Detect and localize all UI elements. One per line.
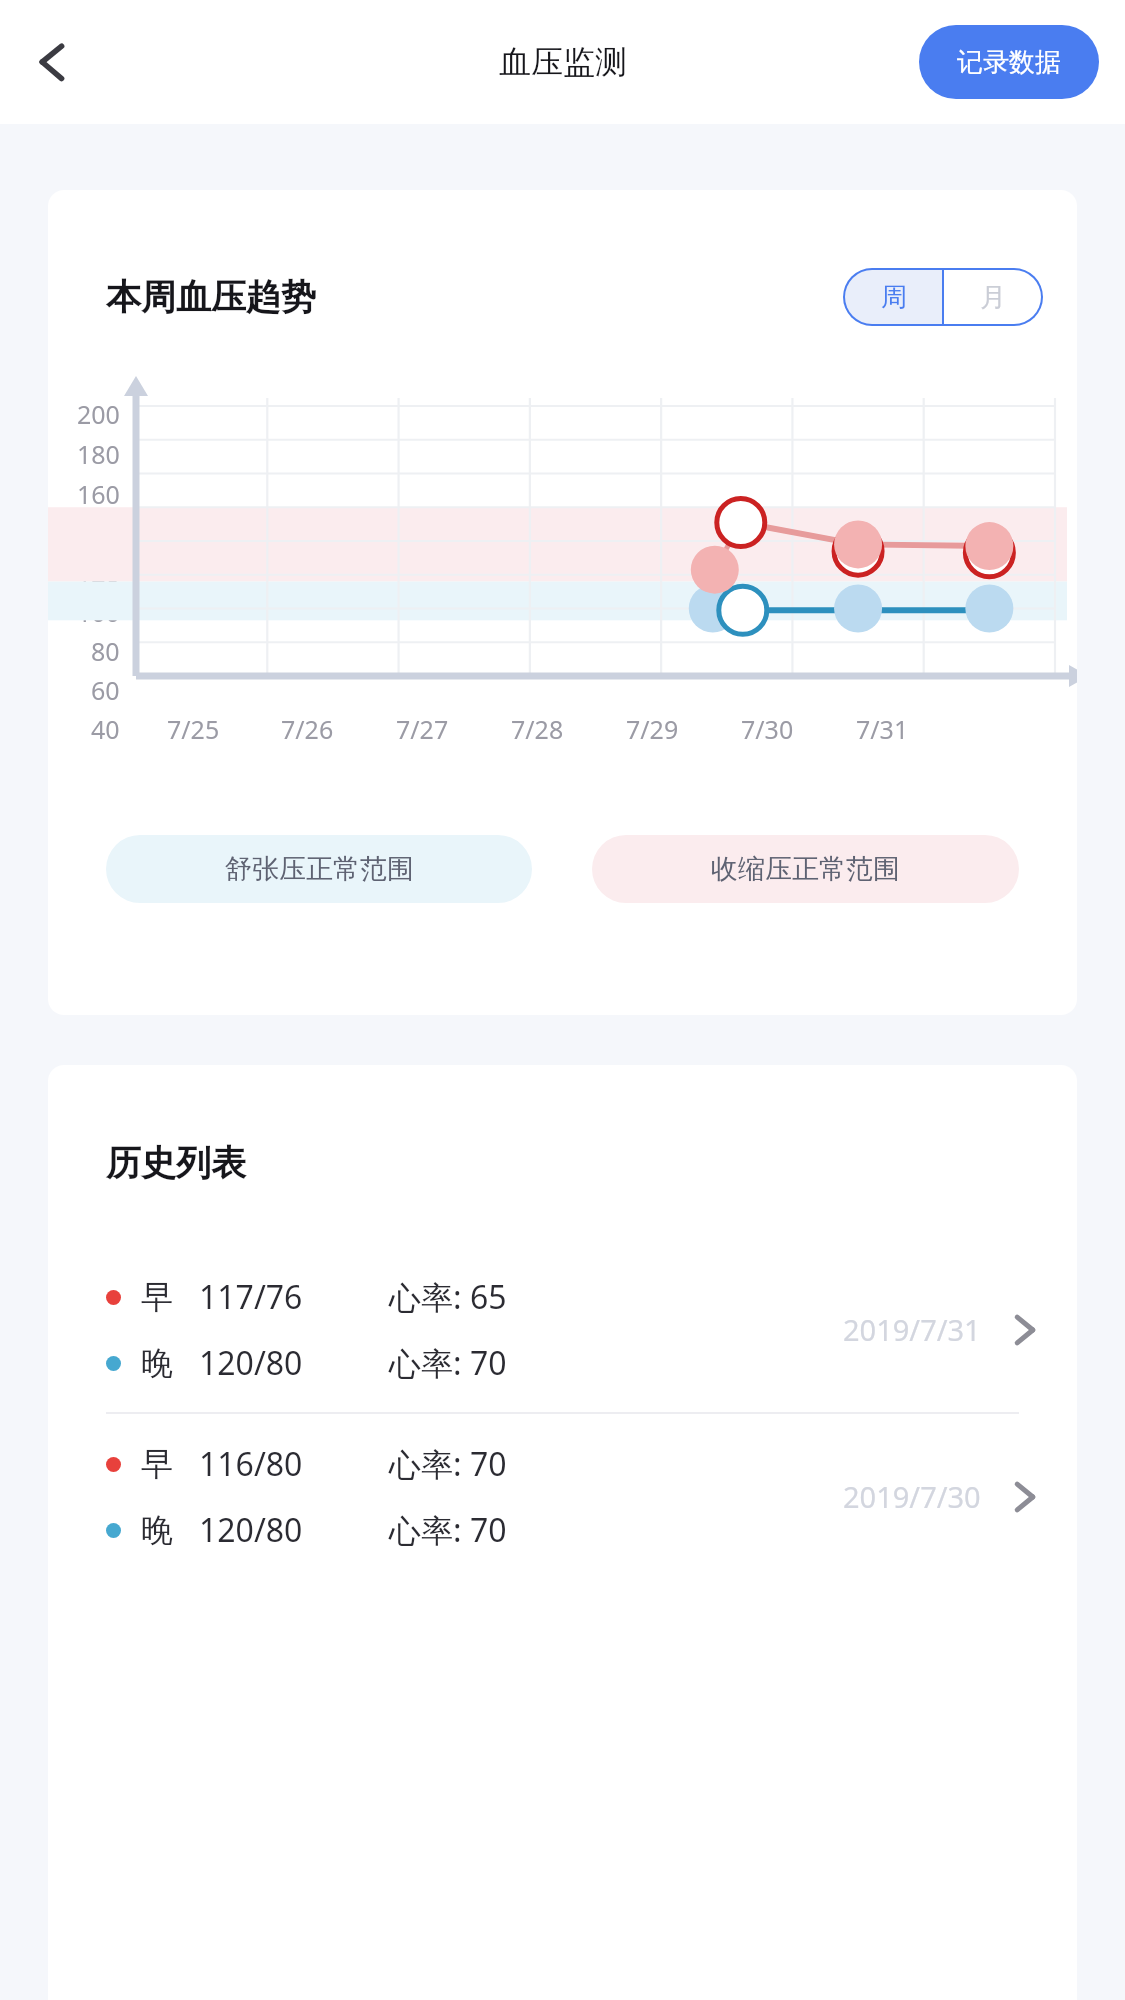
staticText: 200 [77, 397, 120, 431]
staticText: 2019/7/30 [843, 1477, 981, 1516]
button[interactable]: 早 [48, 1247, 1077, 1412]
staticText: 120/80 [199, 1508, 389, 1552]
staticText: 周 [881, 281, 907, 314]
staticText: 心率: 70 [389, 1508, 507, 1552]
staticText: 晚 [141, 1510, 173, 1550]
button[interactable]: Back [18, 27, 88, 97]
staticText: 116/80 [199, 1442, 389, 1486]
staticText: 80 [91, 634, 120, 668]
staticText: 7/25 [167, 712, 220, 746]
staticText: 记录数据 [957, 46, 1061, 79]
staticText: 7/26 [281, 712, 334, 746]
staticText: 7/27 [396, 712, 449, 746]
staticText: 7/31 [856, 712, 909, 746]
staticText: 117/76 [199, 1275, 389, 1319]
staticText: 120 [77, 556, 120, 590]
button[interactable]: 早 [48, 1414, 1077, 1579]
staticText: 40 [91, 712, 120, 746]
staticText: 早 [141, 1444, 173, 1484]
staticText: 7/30 [741, 712, 794, 746]
staticText: 晚 [141, 1343, 173, 1383]
staticText: 120/80 [199, 1341, 389, 1385]
staticText: 7/28 [511, 712, 564, 746]
button[interactable]: 周 [845, 270, 942, 324]
staticText: 60 [91, 673, 120, 707]
staticText: 血压监测 [499, 42, 627, 82]
staticText: 月 [980, 281, 1006, 314]
button[interactable]: 记录数据 [919, 25, 1099, 99]
staticText: 100 [77, 595, 120, 629]
staticText: 舒张压正常范围 [225, 852, 414, 886]
staticText: 180 [77, 437, 120, 471]
button[interactable]: 舒张压正常范围 [106, 835, 532, 903]
button[interactable]: 月 [944, 270, 1041, 324]
staticText: 历史列表 [106, 1141, 246, 1185]
staticText: 早 [141, 1277, 173, 1317]
staticText: 本周血压趋势 [106, 275, 316, 319]
staticText: 心率: 70 [389, 1442, 507, 1486]
button[interactable]: 收缩压正常范围 [592, 835, 1019, 903]
staticText: 7/29 [626, 712, 679, 746]
staticText: 160 [77, 477, 120, 511]
staticText: 2019/7/31 [843, 1310, 981, 1349]
staticText: 收缩压正常范围 [711, 852, 900, 886]
staticText: 心率: 70 [389, 1341, 507, 1385]
staticText: 心率: 65 [389, 1275, 507, 1319]
